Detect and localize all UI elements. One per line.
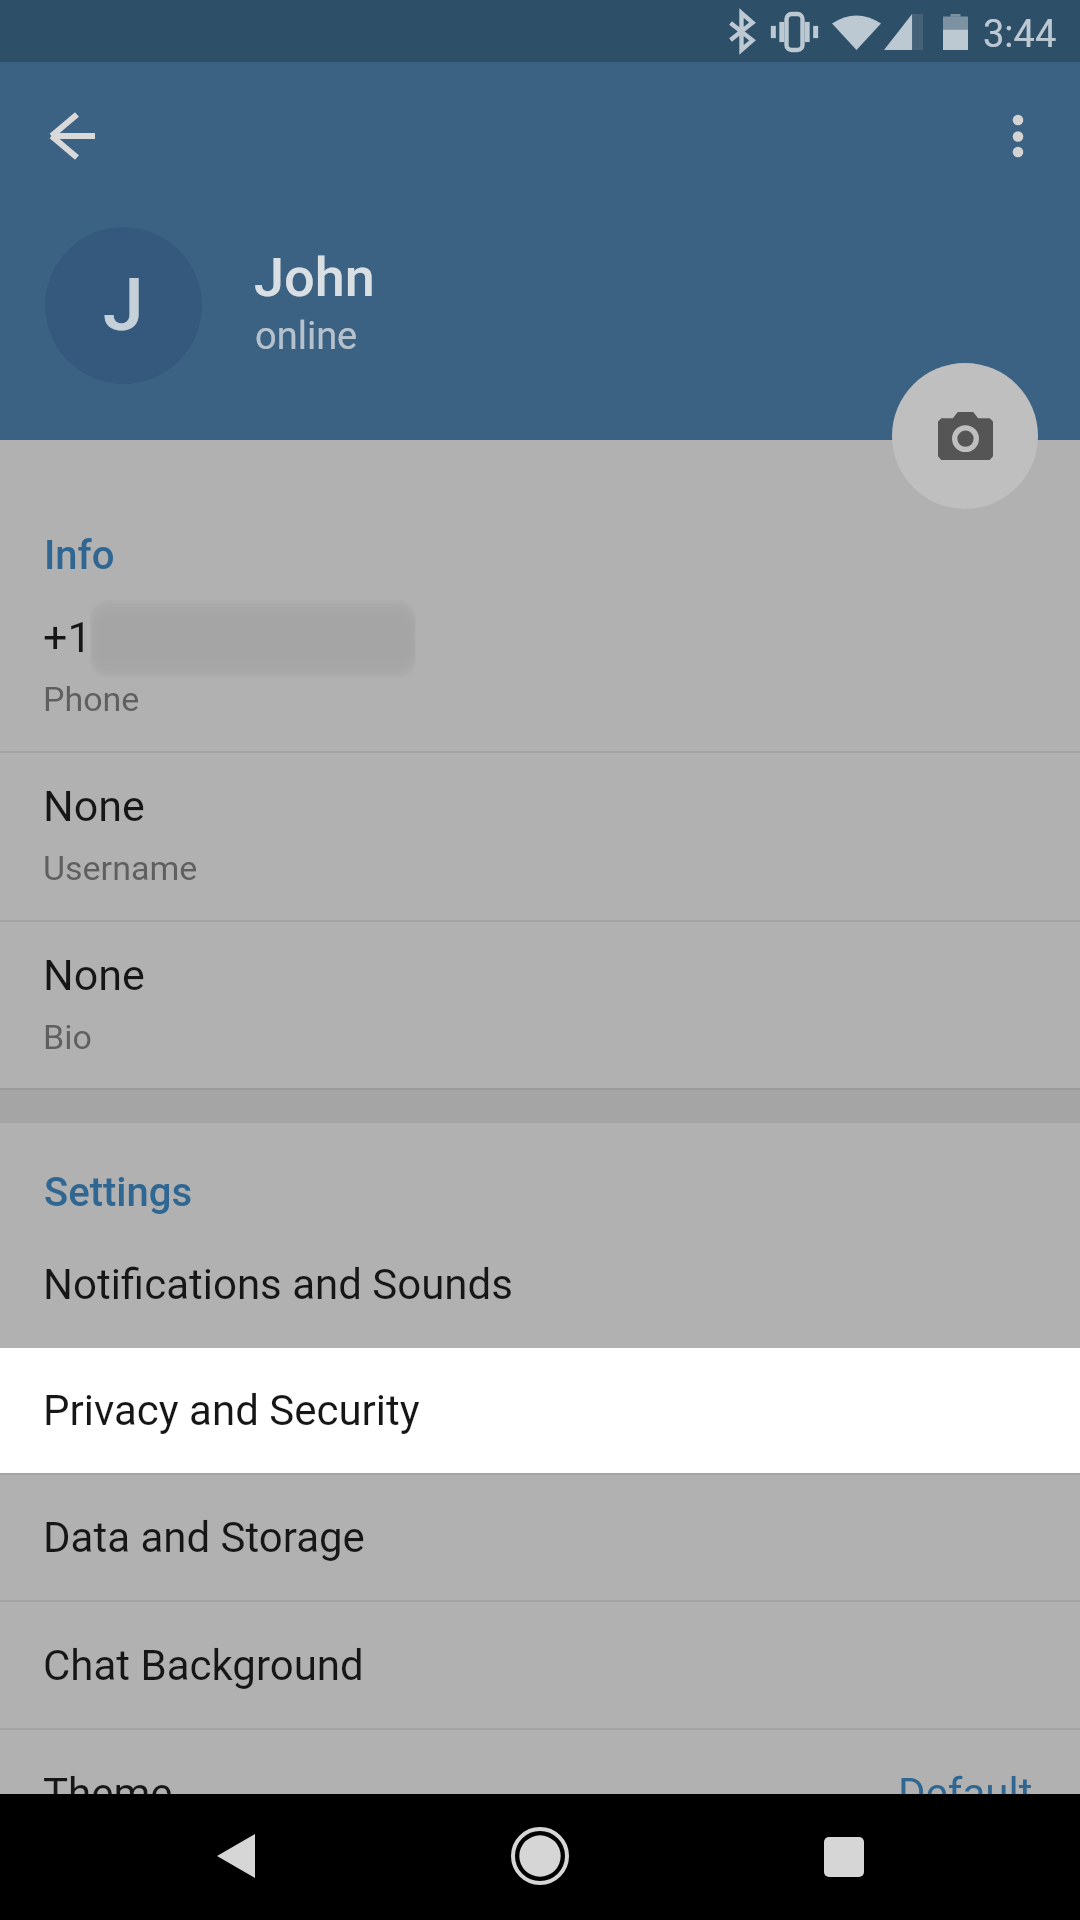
button[interactable]: +1 bbox=[0, 584, 1080, 751]
staticText: Info bbox=[44, 532, 115, 579]
staticText: None bbox=[43, 781, 145, 831]
staticText: None bbox=[43, 950, 145, 1000]
staticText: Privacy and Security bbox=[43, 1386, 420, 1435]
button[interactable]: Home bbox=[480, 1796, 600, 1916]
button[interactable]: Privacy and Security bbox=[0, 1348, 1080, 1473]
button[interactable]: Theme bbox=[0, 1730, 1080, 1856]
button[interactable]: Back bbox=[24, 88, 120, 184]
staticText: Notifications and Sounds bbox=[43, 1260, 513, 1309]
staticText: Username bbox=[43, 848, 198, 888]
staticText: John bbox=[254, 246, 375, 309]
staticText: Data and Storage bbox=[43, 1513, 365, 1562]
button[interactable]: None bbox=[0, 753, 1080, 920]
button[interactable]: None bbox=[0, 922, 1080, 1089]
button[interactable]: Change profile photo bbox=[892, 363, 1038, 509]
staticText: Bio bbox=[43, 1017, 92, 1057]
staticText: Theme bbox=[43, 1769, 173, 1818]
button[interactable]: Profile photo bbox=[45, 227, 202, 384]
staticText: Default bbox=[898, 1769, 1033, 1818]
button[interactable]: Data and Storage bbox=[0, 1475, 1080, 1600]
button[interactable]: More options bbox=[970, 88, 1066, 184]
button[interactable]: Notifications and Sounds bbox=[0, 1220, 1080, 1348]
staticText: online bbox=[255, 314, 358, 359]
staticText: Settings bbox=[44, 1169, 193, 1216]
button[interactable]: Recent apps bbox=[784, 1797, 904, 1917]
staticText: Phone bbox=[43, 679, 140, 719]
staticText: J bbox=[103, 262, 144, 348]
button[interactable]: Chat Background bbox=[0, 1602, 1080, 1728]
button[interactable]: Back bbox=[176, 1796, 296, 1916]
staticText: +1 bbox=[43, 612, 92, 662]
staticText: Chat Background bbox=[43, 1641, 364, 1690]
staticText: 3:44 bbox=[983, 12, 1057, 57]
